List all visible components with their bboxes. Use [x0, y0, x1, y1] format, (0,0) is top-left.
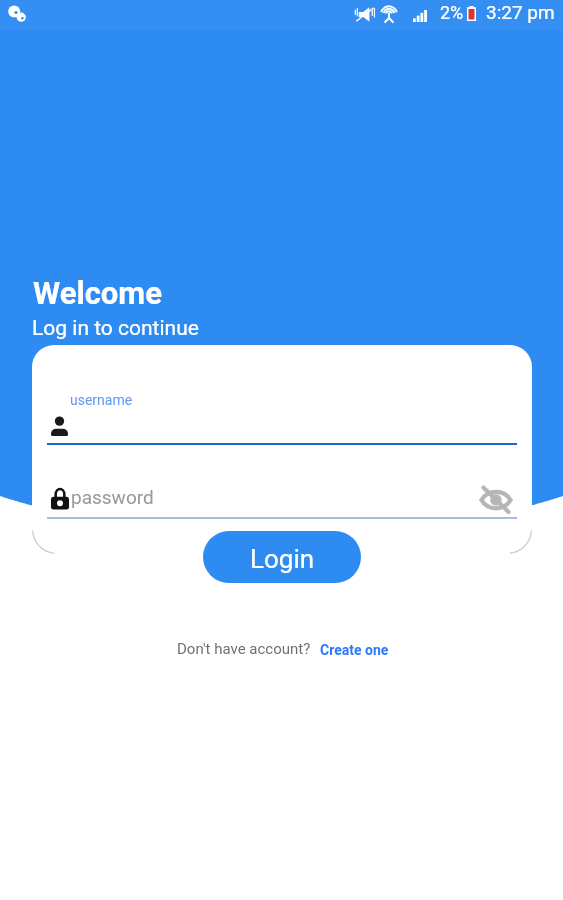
staticText: Welcome	[33, 275, 162, 311]
staticText: username	[70, 392, 133, 408]
staticText: password	[71, 486, 154, 508]
button[interactable]: Show password	[479, 487, 513, 512]
staticText: Log in to continue	[32, 316, 199, 341]
button[interactable]: username	[47, 385, 517, 447]
staticText: 3:27 pm	[486, 1, 555, 23]
button[interactable]: Login	[203, 531, 361, 583]
button[interactable]: Don't have account?	[177, 640, 389, 658]
staticText: Create one	[320, 642, 389, 658]
staticText: Login	[250, 544, 315, 574]
button[interactable]: password	[47, 481, 517, 521]
staticText: Don't have account?	[177, 640, 311, 658]
staticText: 2%	[440, 2, 464, 23]
